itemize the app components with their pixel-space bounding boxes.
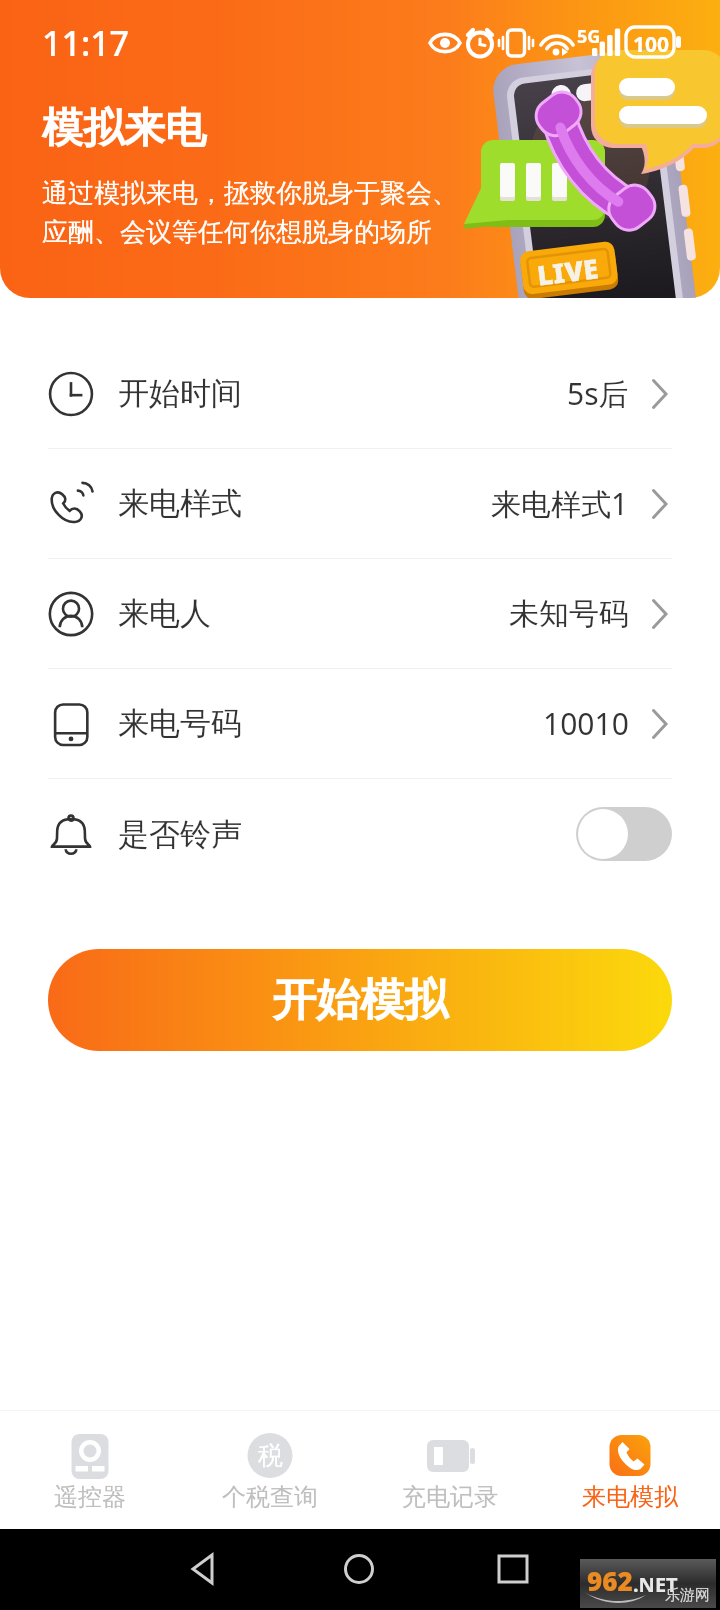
- staticText: 来电样式1: [491, 483, 629, 524]
- button[interactable]: Ringtone toggle: [576, 807, 672, 861]
- staticText: 是否铃声: [118, 815, 242, 854]
- staticText: 个税查询: [222, 1482, 318, 1512]
- button[interactable]: Back: [174, 1539, 234, 1599]
- button[interactable]: Recent apps: [483, 1539, 543, 1599]
- staticText: 11:17: [42, 20, 130, 66]
- staticText: 未知号码: [509, 595, 629, 633]
- button[interactable]: 来电样式: [0, 449, 720, 558]
- button[interactable]: 是否铃声: [0, 779, 720, 889]
- staticText: 充电记录: [402, 1482, 498, 1512]
- button[interactable]: 充电记录: [360, 1411, 540, 1529]
- staticText: .NET: [633, 1571, 678, 1598]
- button[interactable]: Home: [329, 1539, 389, 1599]
- button[interactable]: 开始时间: [0, 339, 720, 448]
- button[interactable]: 税: [180, 1411, 360, 1529]
- staticText: 乐游网: [665, 1586, 710, 1605]
- staticText: 开始时间: [118, 374, 242, 413]
- staticText: 税: [258, 1440, 283, 1471]
- staticText: 962: [587, 1563, 633, 1598]
- staticText: 来电人: [118, 594, 211, 633]
- staticText: LIVE: [535, 249, 601, 294]
- button[interactable]: 遥控器: [0, 1411, 180, 1529]
- staticText: 模拟来电: [42, 103, 206, 155]
- button[interactable]: 来电号码: [0, 669, 720, 778]
- staticText: 来电样式: [118, 484, 242, 523]
- button[interactable]: 开始模拟: [48, 949, 672, 1051]
- staticText: 100: [633, 30, 670, 59]
- staticText: 开始模拟: [272, 973, 448, 1028]
- staticText: 遥控器: [54, 1482, 126, 1512]
- staticText: 5s后: [567, 373, 629, 414]
- staticText: 来电号码: [118, 704, 242, 743]
- staticText: 10010: [543, 703, 629, 744]
- button[interactable]: 来电模拟: [540, 1411, 720, 1529]
- staticText: 来电模拟: [582, 1482, 678, 1512]
- button[interactable]: 来电人: [0, 559, 720, 668]
- staticText: 5G: [577, 24, 601, 49]
- staticText: 通过模拟来电，拯救你脱身于聚会、 应酬、会议等任何你想脱身的场所: [42, 177, 458, 249]
